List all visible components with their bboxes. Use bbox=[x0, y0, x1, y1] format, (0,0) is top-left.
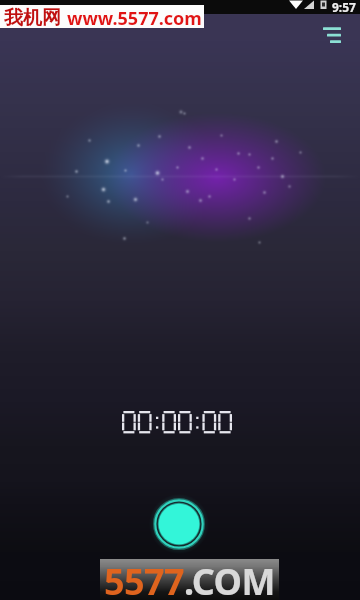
staticText: 5577 bbox=[104, 557, 184, 598]
button[interactable]: Menu bbox=[312, 18, 348, 54]
staticText: 我机网 bbox=[4, 6, 61, 29]
staticText: www.5577.com bbox=[67, 6, 202, 29]
staticText: .COM bbox=[184, 557, 275, 598]
button[interactable]: Start timer bbox=[149, 494, 209, 554]
staticText: 9:57 bbox=[332, 0, 356, 13]
